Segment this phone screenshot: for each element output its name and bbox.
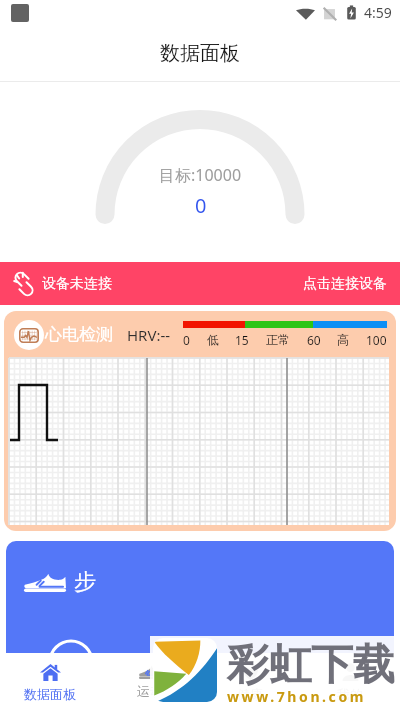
staticText: 正常 xyxy=(266,332,290,347)
staticText: 15 xyxy=(235,332,249,348)
staticText: www.7hon.com xyxy=(227,687,367,706)
staticText: 0 xyxy=(195,192,207,219)
staticText: 运动 xyxy=(137,683,163,699)
button[interactable]: 步 xyxy=(6,541,394,653)
staticText: 健康 xyxy=(237,686,263,702)
staticText: 我的 xyxy=(337,686,363,702)
staticText: 心电检测 xyxy=(45,324,113,345)
staticText: 数据面板 xyxy=(160,41,240,66)
staticText: HRV:-- xyxy=(127,325,171,345)
staticText: 设备未连接 xyxy=(42,275,112,293)
button[interactable]: 数据面板 xyxy=(0,653,100,711)
button[interactable]: 设备未连接 xyxy=(0,262,400,305)
staticText: 点击连接设备 xyxy=(303,275,387,293)
button[interactable]: 我的 xyxy=(300,653,400,711)
button[interactable]: 运动 xyxy=(100,653,200,711)
staticText: 彩虹下载 xyxy=(227,639,395,692)
staticText: 100 xyxy=(366,332,387,348)
staticText: 4:59 xyxy=(364,3,392,22)
button[interactable]: 健康 xyxy=(200,653,300,711)
button[interactable]: 心电检测 xyxy=(4,311,396,531)
staticText: 高 xyxy=(337,332,349,347)
staticText: 目标:10000 xyxy=(159,164,242,186)
staticText: 0 xyxy=(183,332,190,348)
staticText: 数据面板 xyxy=(24,686,76,702)
staticText: 步 xyxy=(74,568,96,596)
staticText: 60 xyxy=(307,332,321,348)
staticText: 低 xyxy=(207,332,219,347)
